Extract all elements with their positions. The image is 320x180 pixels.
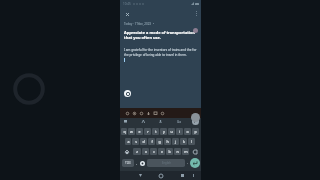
staticText: i: [179, 129, 180, 134]
button[interactable]: Mood: [124, 90, 131, 97]
button[interactable]: Clipboard: [122, 118, 129, 125]
button[interactable]: o: [184, 128, 191, 135]
button[interactable]: Close: [123, 10, 131, 18]
button[interactable]: c: [150, 148, 157, 155]
button[interactable]: a: [125, 138, 131, 145]
staticText: q: [123, 129, 126, 134]
staticText: 10:45: [123, 2, 131, 6]
button[interactable]: Back: [136, 171, 145, 180]
staticText: r: [147, 129, 149, 134]
staticText: u: [170, 129, 173, 134]
staticText: P: [194, 119, 197, 124]
button[interactable]: x: [142, 148, 149, 155]
button[interactable]: b: [166, 148, 173, 155]
staticText: k: [183, 139, 185, 144]
staticText: e: [138, 129, 141, 134]
button[interactable]: Enter: [190, 158, 200, 168]
staticText: h: [166, 139, 169, 144]
staticText: I am grateful for the inventors of train…: [124, 48, 197, 57]
button[interactable]: Space: [147, 159, 185, 167]
staticText: l: [191, 139, 192, 144]
button[interactable]: t: [152, 128, 159, 135]
button[interactable]: Period: [185, 159, 190, 167]
button[interactable]: Stickers: [175, 118, 182, 125]
staticText: m: [184, 149, 188, 154]
button[interactable]: Backspace: [190, 148, 200, 155]
button[interactable]: Keyboard: [191, 171, 195, 180]
button[interactable]: r: [144, 128, 151, 135]
button[interactable]: m: [182, 148, 189, 155]
staticText: n: [176, 149, 179, 154]
staticText: y: [163, 129, 165, 134]
staticText: d: [142, 139, 145, 144]
button[interactable]: q: [121, 128, 127, 135]
button[interactable]: g: [156, 138, 163, 145]
button[interactable]: Italic: [131, 109, 138, 117]
button[interactable]: Mic: [159, 109, 166, 117]
button[interactable]: Comma: [134, 159, 139, 167]
button[interactable]: Recents: [178, 171, 187, 180]
button[interactable]: i: [176, 128, 183, 135]
button[interactable]: Send: [191, 113, 200, 122]
button[interactable]: Image: [152, 109, 159, 117]
button[interactable]: l: [188, 138, 195, 145]
button[interactable]: k: [180, 138, 187, 145]
button[interactable]: ?123: [122, 159, 134, 167]
staticText: j: [175, 139, 176, 144]
button[interactable]: y: [160, 128, 167, 135]
button[interactable]: Bold: [124, 109, 131, 117]
button[interactable]: s: [132, 138, 139, 145]
button[interactable]: h: [164, 138, 171, 145]
staticText: Today · 7 Nov, 2023 •: [124, 22, 154, 26]
button[interactable]: u: [168, 128, 175, 135]
button[interactable]: w: [128, 128, 135, 135]
button[interactable]: e: [136, 128, 143, 135]
staticText: x: [145, 149, 147, 154]
staticText: c: [153, 149, 155, 154]
button[interactable]: More options: [192, 10, 200, 18]
staticText: Ga: [177, 120, 181, 124]
staticText: f: [151, 139, 153, 144]
button[interactable]: v: [158, 148, 165, 155]
staticText: Appreciate a mode of transportation that…: [124, 30, 197, 40]
button[interactable]: Underline: [138, 109, 145, 117]
button[interactable]: Home: [156, 171, 165, 180]
staticText: .: [187, 161, 188, 165]
staticText: s: [135, 139, 137, 144]
staticText: a: [127, 139, 130, 144]
button[interactable]: j: [172, 138, 179, 145]
button[interactable]: p: [192, 128, 199, 135]
staticText: ,: [136, 161, 137, 165]
button[interactable]: d: [140, 138, 147, 145]
staticText: t: [155, 129, 157, 134]
staticText: w: [130, 129, 133, 134]
button[interactable]: n: [174, 148, 181, 155]
button[interactable]: Shift: [121, 148, 132, 155]
staticText: v: [161, 149, 163, 154]
staticText: z: [136, 149, 138, 154]
staticText: English: [162, 161, 171, 165]
staticText: ?123: [125, 161, 131, 165]
staticText: o: [186, 129, 189, 134]
staticText: p: [194, 129, 197, 134]
button[interactable]: Settings: [157, 118, 164, 125]
staticText: b: [168, 149, 171, 154]
button[interactable]: Attach: [145, 109, 152, 117]
staticText: g: [158, 139, 161, 144]
button[interactable]: f: [148, 138, 155, 145]
button[interactable]: Translate: [140, 118, 147, 125]
button[interactable]: z: [133, 148, 141, 155]
button[interactable]: Emoji: [139, 159, 146, 167]
button[interactable]: Profile: [192, 118, 199, 125]
